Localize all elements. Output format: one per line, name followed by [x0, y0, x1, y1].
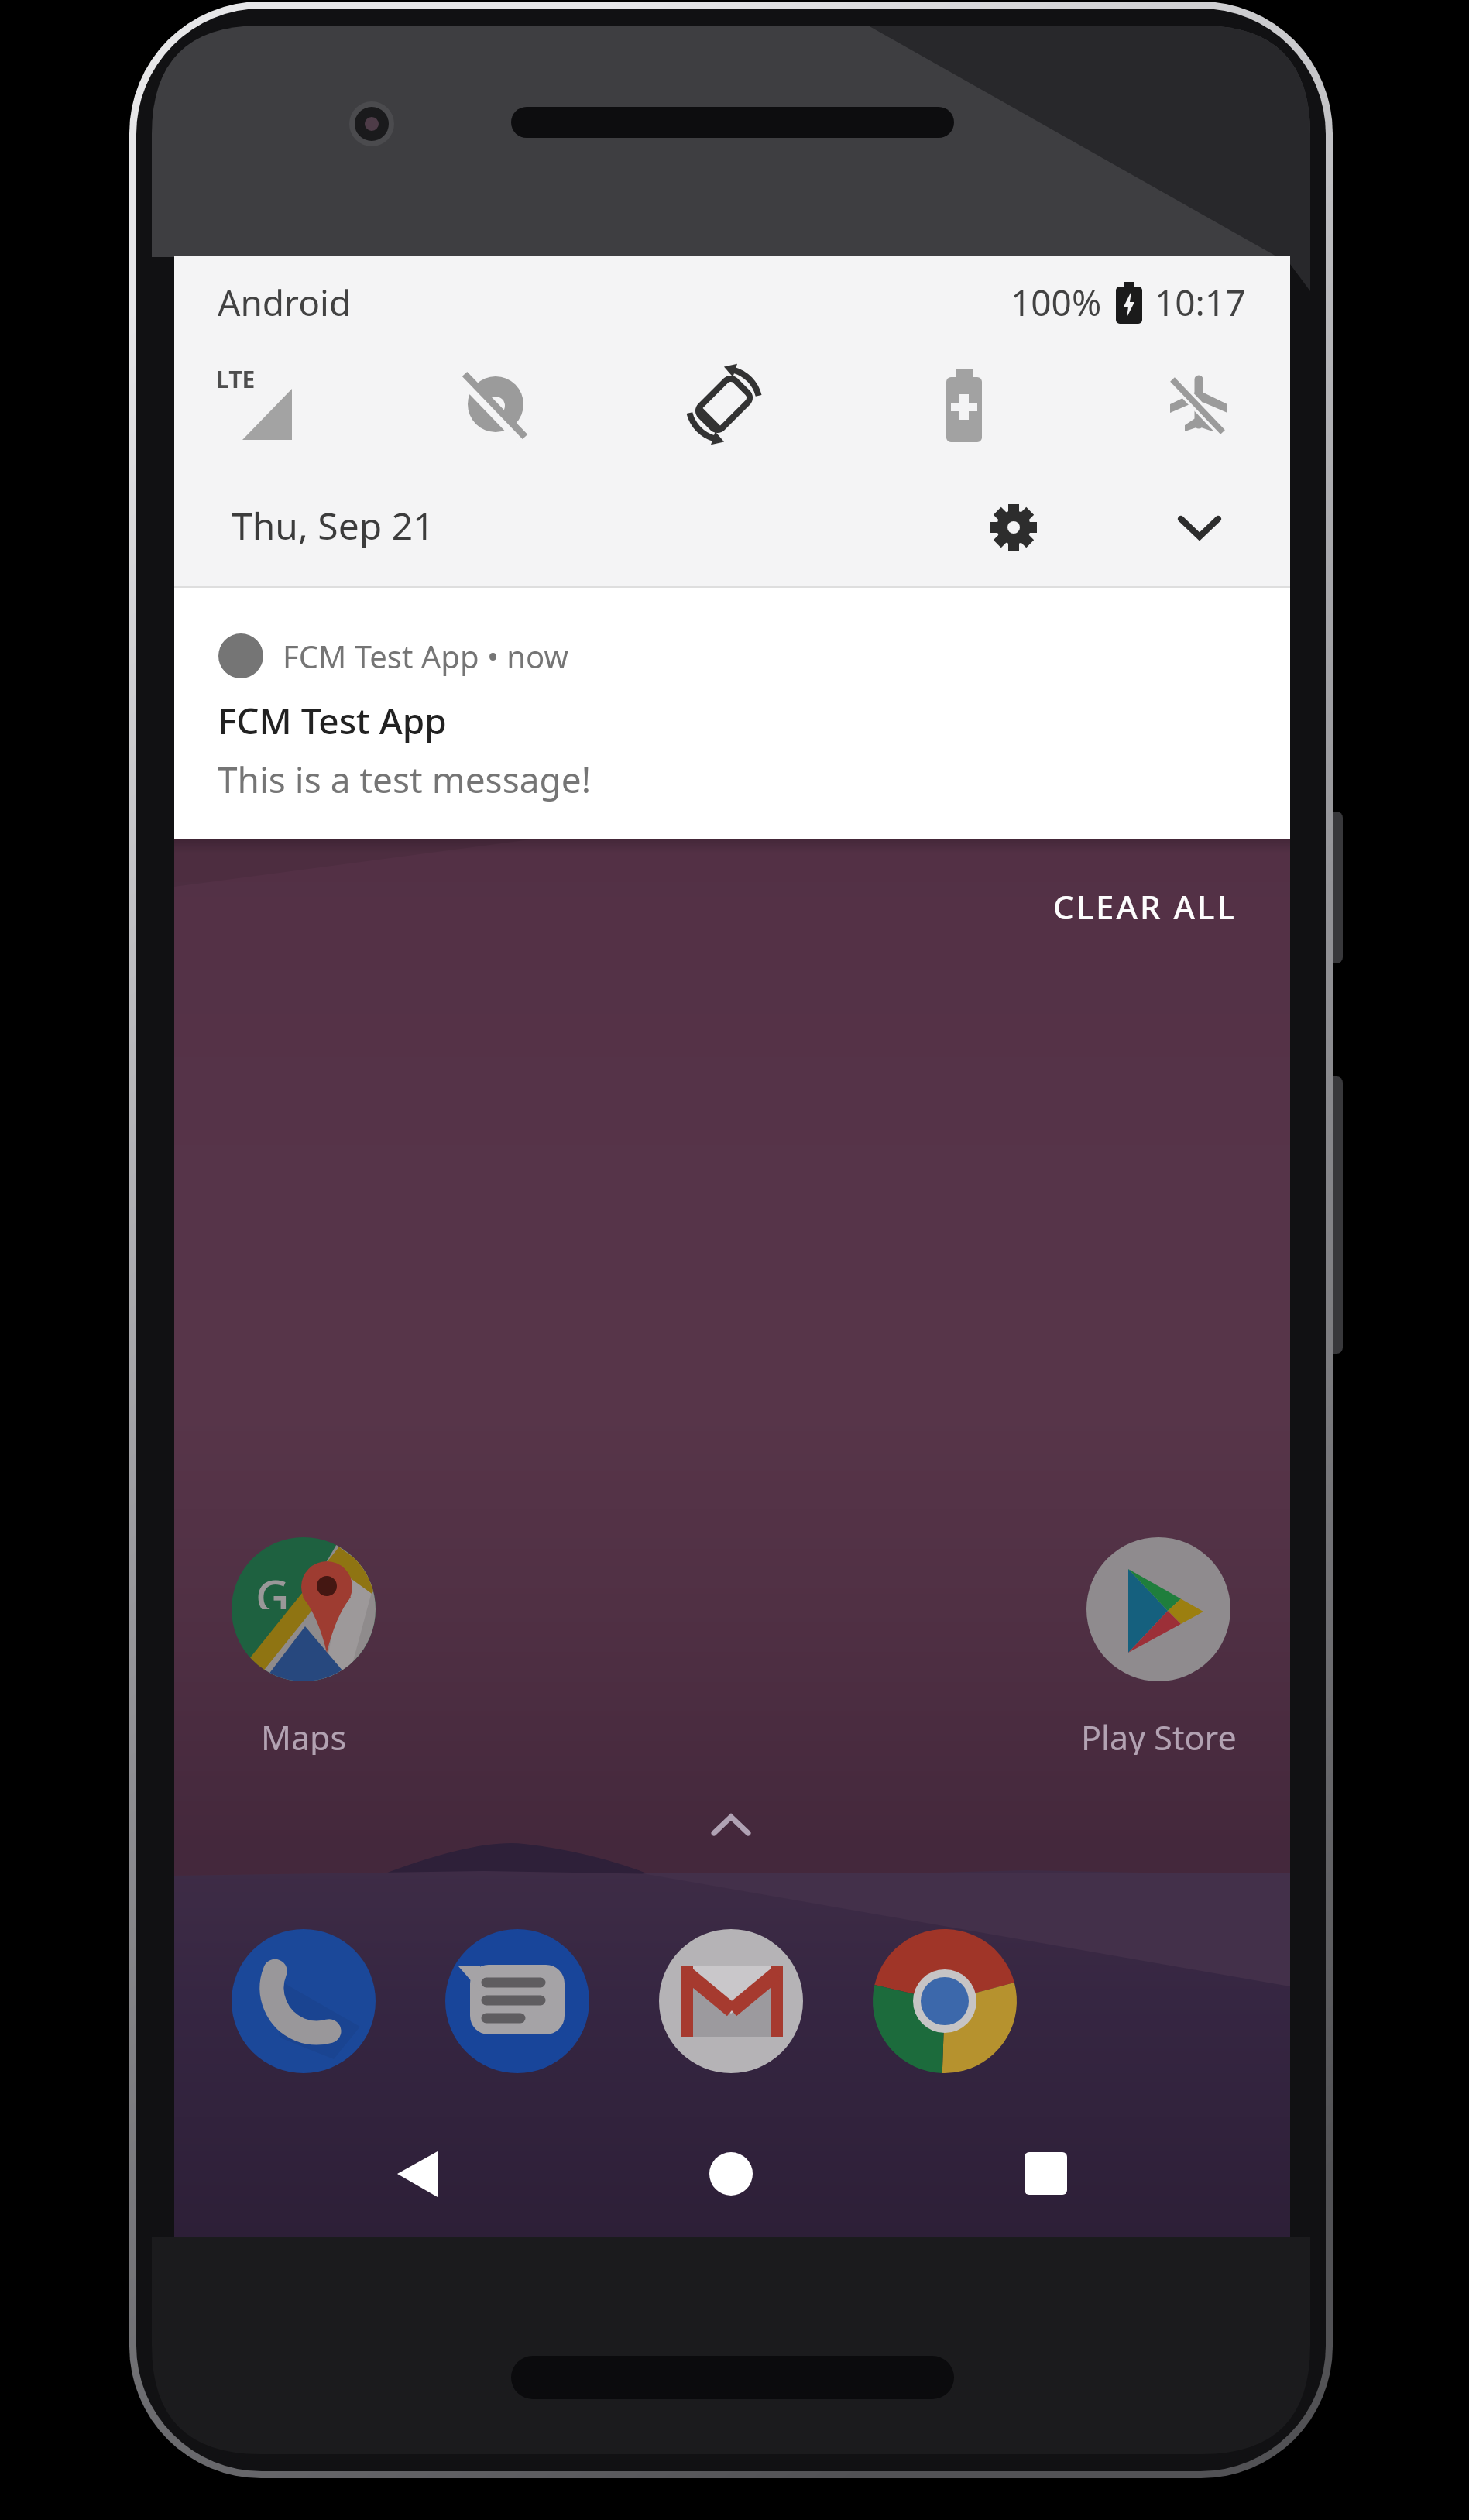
staticText: FCM Test App — [218, 696, 447, 744]
staticText: 10:17 — [1155, 278, 1246, 327]
staticText: Android — [218, 278, 352, 327]
button[interactable] — [670, 2130, 794, 2223]
button[interactable] — [445, 356, 546, 457]
button[interactable] — [445, 1929, 589, 2073]
button[interactable] — [674, 356, 774, 457]
button[interactable] — [914, 356, 1014, 457]
button[interactable]: LTE — [205, 356, 306, 457]
staticText: G — [256, 1564, 290, 1609]
button[interactable] — [360, 2130, 484, 2223]
staticText: FCM Test App • now — [283, 635, 568, 677]
staticText: Play Store — [1081, 1715, 1237, 1755]
button[interactable] — [980, 2130, 1103, 2223]
button[interactable] — [1086, 1537, 1230, 1681]
button[interactable] — [975, 489, 1052, 566]
staticText: 100% — [1011, 278, 1102, 327]
button[interactable] — [873, 1929, 1017, 2073]
staticText: This is a test message! — [218, 755, 592, 803]
staticText: Thu, Sep 21 — [232, 500, 434, 551]
button[interactable] — [1161, 489, 1238, 566]
button[interactable] — [1146, 356, 1247, 457]
button[interactable] — [232, 1537, 376, 1681]
staticText: Maps — [261, 1715, 347, 1755]
button[interactable] — [659, 1929, 803, 2073]
button[interactable] — [232, 1929, 376, 2073]
button[interactable] — [174, 587, 1290, 839]
staticText: LTE — [216, 363, 256, 395]
staticText: CLEAR ALL — [1053, 884, 1237, 929]
button[interactable]: CLEAR ALL — [997, 871, 1237, 941]
